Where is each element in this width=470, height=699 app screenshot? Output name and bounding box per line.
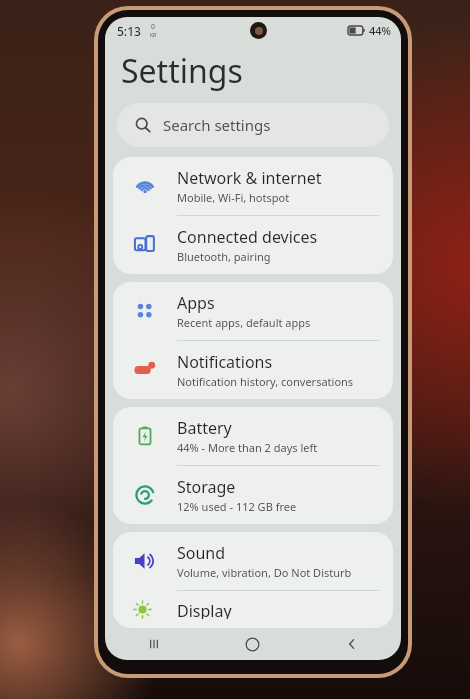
button[interactable]: Notifications (113, 341, 393, 399)
button[interactable]: Connected devices (113, 216, 393, 274)
button[interactable]: Network & internet (113, 157, 393, 215)
staticText: 12% used - 112 GB free (177, 499, 297, 514)
button[interactable]: Battery (113, 407, 393, 465)
staticText: KB (150, 32, 157, 39)
button[interactable]: Back (302, 628, 401, 660)
staticText: Volume, vibration, Do Not Disturb (177, 565, 352, 580)
staticText: 0 (151, 22, 156, 32)
staticText: Settings (121, 49, 243, 93)
button[interactable]: Recent apps (105, 628, 203, 660)
staticText: 44% - More than 2 days left (177, 440, 318, 455)
staticText: Notifications (177, 351, 273, 373)
staticText: Mobile, Wi-Fi, hotspot (177, 190, 290, 205)
button[interactable]: Search settings (117, 103, 389, 147)
button[interactable]: Home (203, 628, 302, 660)
button[interactable]: Sound (113, 532, 393, 590)
staticText: Battery (177, 417, 232, 439)
staticText: 5:13 (117, 23, 141, 39)
staticText: Storage (177, 476, 236, 498)
staticText: Apps (177, 292, 215, 314)
staticText: Notification history, conversations (177, 374, 354, 389)
staticText: Display (177, 600, 232, 619)
staticText: Bluetooth, pairing (177, 249, 271, 264)
staticText: Connected devices (177, 226, 318, 248)
button[interactable]: Apps (113, 282, 393, 340)
staticText: Network & internet (177, 167, 322, 189)
staticText: Recent apps, default apps (177, 315, 311, 330)
staticText: Search settings (163, 115, 271, 135)
staticText: Sound (177, 542, 226, 564)
button[interactable]: Display (113, 591, 393, 628)
staticText: 44% (369, 23, 391, 38)
button[interactable]: Storage (113, 466, 393, 524)
